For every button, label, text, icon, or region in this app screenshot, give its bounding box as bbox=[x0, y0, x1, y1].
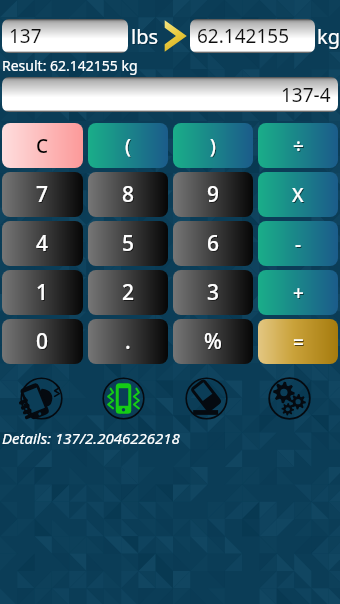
staticText: kg bbox=[317, 23, 340, 50]
staticText: lbs bbox=[132, 24, 160, 51]
staticText: 7 bbox=[37, 181, 50, 210]
staticText: = bbox=[294, 330, 305, 356]
staticText: % bbox=[205, 328, 223, 357]
staticText: 2 bbox=[123, 279, 136, 308]
button[interactable]: C bbox=[2, 123, 83, 168]
staticText: . bbox=[125, 327, 131, 356]
staticText: 137 bbox=[9, 23, 42, 49]
staticText: - bbox=[296, 232, 303, 258]
button[interactable]: 7 bbox=[2, 172, 83, 217]
button[interactable]: 3 bbox=[173, 270, 253, 315]
staticText: 0 bbox=[36, 327, 49, 356]
button[interactable]: . bbox=[88, 319, 168, 364]
button[interactable]: - bbox=[258, 221, 338, 266]
staticText: 8 bbox=[123, 181, 136, 210]
staticText: 5 bbox=[122, 229, 135, 258]
staticText: 8 bbox=[122, 180, 135, 209]
button[interactable]: 6 bbox=[173, 221, 253, 266]
button[interactable]: 137-4 bbox=[2, 77, 338, 112]
staticText: ÷ bbox=[294, 134, 305, 160]
staticText: 1 bbox=[36, 278, 49, 307]
button[interactable]: ÷ bbox=[258, 123, 338, 168]
button[interactable]: % bbox=[173, 319, 253, 364]
staticText: X bbox=[293, 183, 305, 209]
button[interactable]: 62.142155 bbox=[190, 19, 315, 53]
staticText: ) bbox=[210, 133, 216, 159]
button[interactable]: 137 bbox=[2, 19, 128, 53]
button[interactable]: X bbox=[258, 172, 338, 217]
staticText: + bbox=[293, 280, 304, 306]
staticText: X bbox=[292, 182, 304, 208]
button[interactable]: 8 bbox=[88, 172, 168, 217]
staticText: % bbox=[204, 327, 222, 356]
button[interactable]: 5 bbox=[88, 221, 168, 266]
staticText: = bbox=[293, 329, 304, 355]
staticText: ÷ bbox=[293, 133, 304, 159]
staticText: 0 bbox=[37, 328, 50, 357]
button[interactable]: Vibrate bbox=[82, 373, 165, 423]
button[interactable]: ( bbox=[88, 123, 168, 168]
staticText: 137-4 bbox=[281, 82, 331, 108]
staticText: 4 bbox=[37, 230, 50, 259]
button[interactable]: + bbox=[258, 270, 338, 315]
staticText: 9 bbox=[208, 181, 221, 210]
staticText: ) bbox=[211, 134, 217, 160]
staticText: Result: 62.142155 kg bbox=[2, 56, 340, 75]
button[interactable]: Settings bbox=[248, 373, 331, 423]
staticText: C bbox=[36, 133, 49, 159]
button[interactable]: 4 bbox=[2, 221, 83, 266]
staticText: 7 bbox=[36, 180, 49, 209]
button[interactable]: 0 bbox=[2, 319, 83, 364]
staticText: Details: 137/2.2046226218 bbox=[2, 428, 180, 448]
staticText: 2 bbox=[122, 278, 135, 307]
staticText: 62.142155 bbox=[197, 23, 290, 49]
staticText: 3 bbox=[208, 279, 221, 308]
button[interactable]: = bbox=[258, 319, 338, 364]
staticText: ( bbox=[126, 134, 132, 160]
staticText: 6 bbox=[208, 230, 221, 259]
staticText: 5 bbox=[123, 230, 136, 259]
button[interactable]: Shake to convert bbox=[0, 373, 82, 423]
button[interactable]: 2 bbox=[88, 270, 168, 315]
staticText: ( bbox=[125, 133, 131, 159]
button[interactable]: ) bbox=[173, 123, 253, 168]
staticText: 6 bbox=[207, 229, 220, 258]
staticText: 4 bbox=[36, 229, 49, 258]
staticText: 3 bbox=[207, 278, 220, 307]
staticText: + bbox=[294, 281, 305, 307]
button[interactable]: 1 bbox=[2, 270, 83, 315]
staticText: 9 bbox=[207, 180, 220, 209]
button[interactable]: 9 bbox=[173, 172, 253, 217]
staticText: lbs bbox=[131, 23, 159, 50]
staticText: kg bbox=[318, 24, 340, 51]
staticText: . bbox=[126, 328, 132, 357]
staticText: 1 bbox=[37, 279, 50, 308]
staticText: - bbox=[295, 231, 302, 257]
button[interactable]: Erase bbox=[165, 373, 248, 423]
